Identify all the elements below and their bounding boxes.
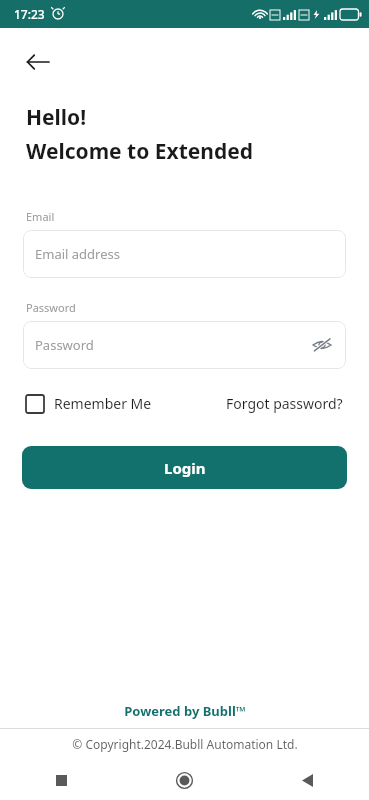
staticText: Welcome to Extended — [26, 137, 254, 166]
staticText: Powered by Bubll™ — [124, 702, 246, 720]
button[interactable]: Powered by Bubll™ — [124, 700, 246, 722]
button[interactable]: Password — [23, 321, 346, 369]
button[interactable]: Home — [123, 760, 246, 800]
staticText: Email — [26, 209, 55, 224]
button[interactable]: Remember Me — [26, 394, 152, 413]
staticText: 17:23 — [14, 6, 45, 22]
button[interactable]: Back — [18, 42, 58, 82]
button[interactable]: Email address — [23, 230, 346, 278]
button[interactable]: Login — [22, 446, 347, 489]
staticText: Password — [35, 336, 94, 354]
staticText: Login — [164, 458, 206, 478]
button[interactable]: Forgot password? — [226, 394, 343, 413]
button[interactable]: Show password — [308, 331, 336, 359]
staticText: Forgot password? — [226, 394, 343, 413]
staticText: Email address — [35, 245, 120, 263]
staticText: Password — [26, 300, 76, 315]
staticText: Hello! — [26, 103, 87, 132]
button[interactable]: Recent apps — [0, 760, 123, 800]
staticText: Remember Me — [54, 394, 152, 413]
button[interactable]: Back — [246, 760, 369, 800]
staticText: © Copyright.2024.Bubll Automation Ltd. — [72, 736, 298, 752]
